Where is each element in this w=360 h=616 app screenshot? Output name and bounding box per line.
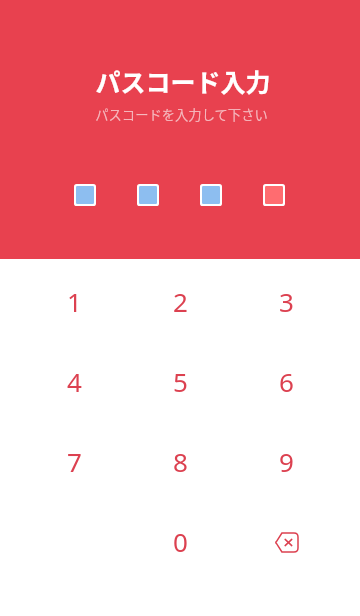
button[interactable]: 3 <box>233 261 339 341</box>
button[interactable]: 8 <box>127 421 233 501</box>
staticText: 3 <box>279 284 294 319</box>
button[interactable]: 2 <box>127 261 233 341</box>
staticText: 8 <box>173 444 188 479</box>
button[interactable]: 9 <box>233 421 339 501</box>
staticText: パスコード入力 <box>95 63 271 99</box>
staticText: 1 <box>67 284 82 319</box>
staticText: 2 <box>173 284 188 319</box>
staticText: パスコードを入力して下さい <box>95 105 268 124</box>
staticText: 9 <box>279 444 294 479</box>
staticText: 7 <box>67 444 82 479</box>
button[interactable]: 1 <box>21 261 127 341</box>
button[interactable]: 0 <box>127 501 233 581</box>
button[interactable]: 5 <box>127 341 233 421</box>
button[interactable]: 7 <box>21 421 127 501</box>
button[interactable]: 6 <box>233 341 339 421</box>
button[interactable]: Delete <box>233 501 339 581</box>
staticText: 6 <box>279 364 294 399</box>
button[interactable]: 4 <box>21 341 127 421</box>
staticText: 5 <box>173 364 188 399</box>
staticText: 4 <box>67 364 82 399</box>
staticText: 0 <box>173 524 188 559</box>
